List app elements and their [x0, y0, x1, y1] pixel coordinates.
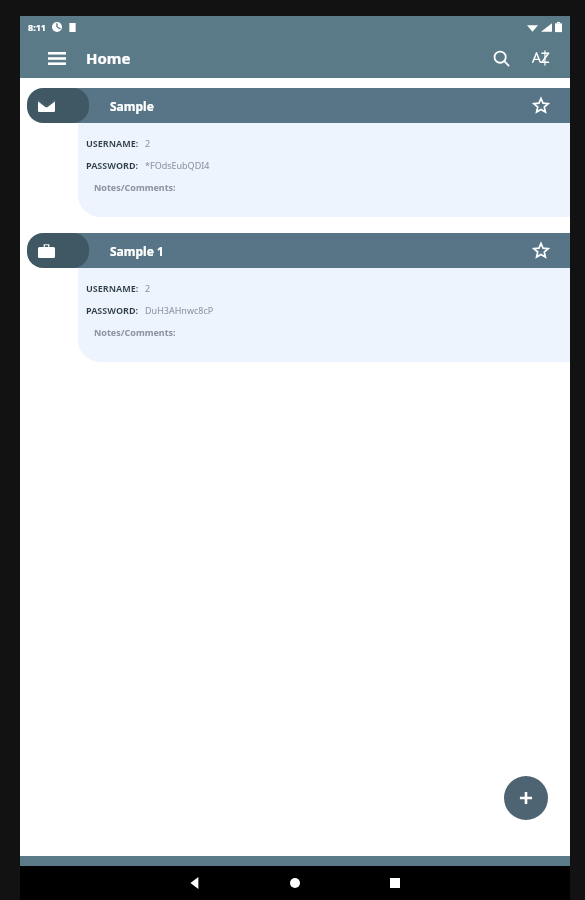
staticText: Home [86, 48, 131, 68]
staticText: Sample 1 [110, 243, 164, 259]
staticText: USERNAME: [86, 282, 139, 294]
staticText: DuH3AHnwc8cP [145, 304, 214, 316]
button[interactable]: Back [173, 866, 217, 900]
button[interactable]: USERNAME: [78, 123, 570, 217]
button[interactable]: Search [484, 41, 518, 75]
button[interactable]: Home [273, 866, 317, 900]
staticText: 2 [145, 137, 151, 149]
staticText: Sample [110, 98, 154, 114]
staticText: Notes/Comments: [94, 326, 176, 338]
button[interactable]: Sample [48, 88, 570, 123]
button[interactable]: USERNAME: [78, 268, 570, 362]
button[interactable]: Sample 1 [48, 233, 570, 268]
staticText: 2 [145, 282, 151, 294]
button[interactable]: Add new entry [504, 776, 548, 820]
button[interactable]: Open navigation menu [42, 43, 72, 73]
button[interactable]: Recent apps [373, 866, 417, 900]
button[interactable]: Sort alphabetically [524, 41, 558, 75]
staticText: PASSWORD: [86, 159, 139, 171]
staticText: *FOdsEubQDI4 [145, 159, 210, 171]
button[interactable]: Favourite [526, 236, 556, 266]
button[interactable]: Work entry [27, 233, 89, 268]
staticText: PASSWORD: [86, 304, 139, 316]
button[interactable]: Email entry [27, 88, 89, 123]
staticText: 8:11 [28, 21, 46, 33]
staticText: USERNAME: [86, 137, 139, 149]
button[interactable]: Favourite [526, 91, 556, 121]
staticText: Notes/Comments: [94, 181, 176, 193]
